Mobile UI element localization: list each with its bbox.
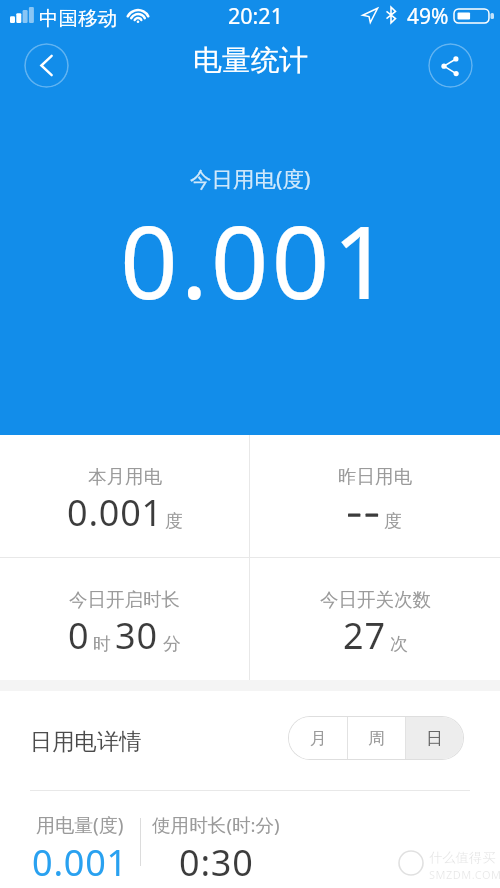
- staticText: 什么值得买: [429, 849, 496, 866]
- staticText: 本月用电: [88, 465, 162, 488]
- button[interactable]: 日: [406, 717, 463, 759]
- button[interactable]: 使用时长(时:分): [138, 791, 294, 888]
- button[interactable]: 周: [348, 717, 405, 759]
- staticText: 日用电详情: [30, 728, 142, 756]
- staticText: 20:21: [228, 1, 283, 30]
- staticText: 49%: [407, 2, 449, 31]
- staticText: 中国移动: [39, 6, 117, 31]
- button[interactable]: 用电量(度): [10, 791, 150, 888]
- staticText: 30: [115, 611, 158, 660]
- staticText: 0:30: [179, 838, 254, 887]
- staticText: 次: [390, 633, 408, 656]
- button[interactable]: Back: [24, 43, 69, 88]
- staticText: 分: [163, 633, 181, 656]
- staticText: 用电量(度): [36, 812, 124, 838]
- button[interactable]: 月: [289, 717, 347, 759]
- staticText: 0.001: [120, 191, 394, 329]
- staticText: 0.001: [67, 488, 164, 537]
- staticText: SMZDM.COM: [429, 867, 500, 882]
- staticText: 今日开关次数: [320, 588, 431, 611]
- button[interactable]: 今日开关次数: [250, 558, 500, 680]
- staticText: 0.001: [32, 838, 129, 887]
- button[interactable]: 昨日用电: [250, 435, 500, 557]
- staticText: 日: [426, 728, 443, 749]
- staticText: 时: [93, 633, 111, 656]
- staticText: 昨日用电: [338, 465, 412, 488]
- staticText: 周: [368, 728, 385, 749]
- staticText: 0: [68, 611, 90, 660]
- staticText: 月: [310, 728, 327, 749]
- staticText: 使用时长(时:分): [152, 812, 280, 837]
- staticText: 今日开启时长: [69, 588, 180, 611]
- staticText: 27: [343, 611, 386, 660]
- button[interactable]: 本月用电: [0, 435, 249, 557]
- staticText: 电量统计: [193, 42, 308, 78]
- button[interactable]: Share: [428, 43, 473, 88]
- button[interactable]: 今日开启时长: [0, 558, 249, 680]
- staticText: 度: [384, 510, 402, 533]
- staticText: 今日用电(度): [190, 164, 311, 193]
- staticText: 度: [165, 510, 183, 533]
